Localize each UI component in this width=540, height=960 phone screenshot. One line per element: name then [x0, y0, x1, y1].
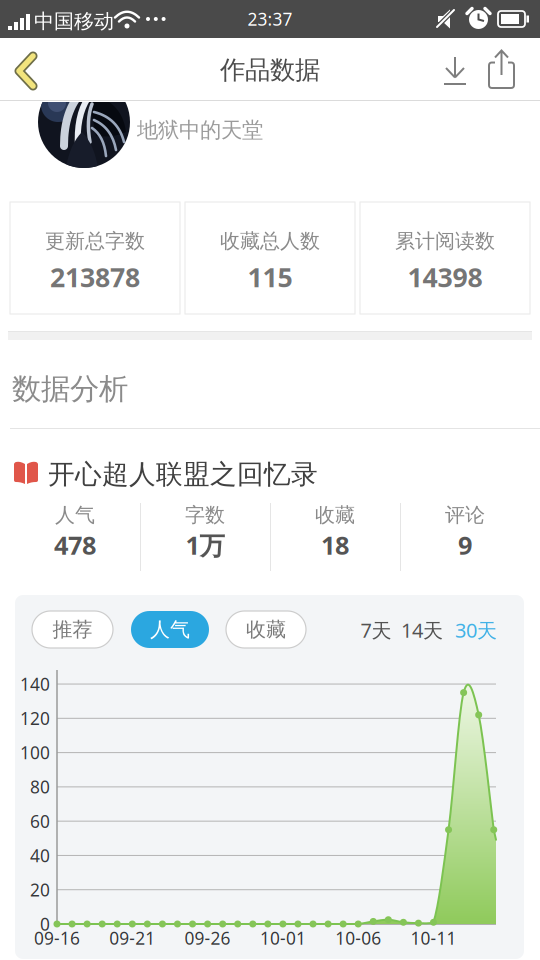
staticText: 累计阅读数 — [395, 229, 495, 253]
staticText: 1万 — [185, 528, 224, 562]
staticText: 140 — [20, 672, 50, 695]
staticText: 40 — [30, 844, 50, 867]
staticText: 10-06 — [335, 926, 381, 949]
staticText: 数据分析 — [12, 371, 128, 407]
staticText: 收藏 — [315, 503, 355, 527]
staticText: 评论 — [445, 503, 485, 527]
staticText: 收藏总人数 — [220, 229, 320, 253]
staticText: 213878 — [50, 259, 140, 295]
staticText: 14天 — [401, 617, 443, 643]
staticText: 18 — [321, 528, 349, 562]
button[interactable] — [8, 46, 52, 94]
staticText: 14398 — [407, 259, 482, 295]
staticText: 09-16 — [34, 926, 80, 949]
staticText: 20 — [30, 878, 50, 901]
staticText: 100 — [20, 741, 50, 764]
staticText: 更新总字数 — [45, 229, 145, 253]
staticText: 字数 — [185, 503, 225, 527]
button[interactable]: 推荐 — [32, 611, 113, 648]
staticText: 地狱中的天堂 — [137, 117, 263, 143]
staticText: 30天 — [455, 617, 497, 643]
button[interactable] — [483, 46, 521, 94]
staticText: 作品数据 — [220, 54, 320, 85]
staticText: 人气 — [150, 617, 190, 642]
button[interactable]: 人气 — [131, 611, 209, 648]
staticText: 60 — [30, 810, 50, 833]
button[interactable]: 30天 — [444, 615, 508, 645]
staticText: 09-21 — [109, 926, 155, 949]
staticText: 115 — [247, 259, 292, 295]
staticText: 开心超人联盟之回忆录 — [48, 458, 318, 491]
staticText: 80 — [30, 775, 50, 798]
staticText: 0 — [40, 912, 50, 935]
button[interactable] — [436, 48, 476, 92]
staticText: 中国移动 — [34, 9, 114, 34]
staticText: 23:37 — [247, 7, 292, 30]
staticText: 120 — [20, 707, 50, 730]
button[interactable]: 收藏 — [226, 611, 306, 648]
button[interactable]: 开心超人联盟之回忆录 — [10, 452, 530, 494]
staticText: 10-01 — [260, 926, 306, 949]
button[interactable]: 14天 — [390, 615, 454, 645]
staticText: 收藏 — [246, 617, 286, 642]
button[interactable]: 7天 — [346, 615, 406, 645]
staticText: 人气 — [55, 503, 95, 527]
staticText: 推荐 — [52, 617, 92, 642]
staticText: 10-11 — [410, 926, 456, 949]
staticText: 09-26 — [185, 926, 231, 949]
staticText: 9 — [458, 528, 472, 562]
staticText: 7天 — [360, 617, 391, 643]
staticText: 478 — [54, 528, 96, 562]
